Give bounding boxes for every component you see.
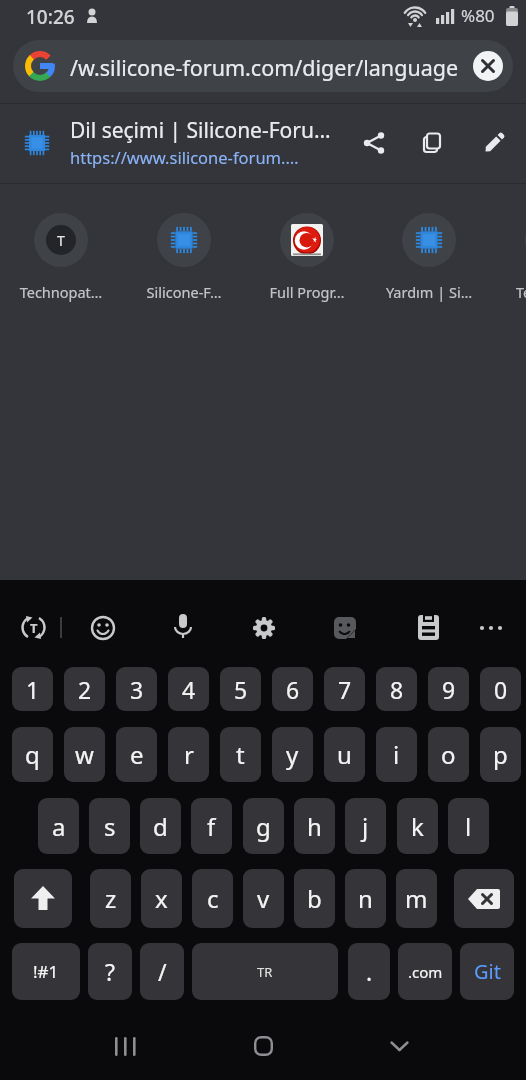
button[interactable] [379, 1028, 419, 1064]
staticText: b [307, 882, 322, 915]
button[interactable] [89, 614, 117, 642]
button[interactable]: i [376, 727, 417, 782]
button[interactable]: m [396, 869, 437, 928]
staticText: 0 [494, 674, 508, 705]
button[interactable]: .com [398, 943, 452, 1000]
button[interactable]: 8 [376, 667, 417, 711]
staticText: 4 [182, 674, 196, 705]
button[interactable] [412, 123, 452, 163]
button[interactable]: T [6, 206, 116, 308]
button[interactable]: 3 [116, 667, 157, 711]
button[interactable]: v [243, 869, 284, 928]
staticText: 7 [338, 674, 352, 705]
staticText: 9 [442, 674, 456, 705]
button[interactable]: Yardım | Si… [374, 206, 484, 308]
staticText: c [207, 882, 219, 915]
button[interactable] [415, 613, 442, 643]
button[interactable]: z [90, 869, 131, 928]
button[interactable]: k [397, 798, 438, 854]
button[interactable]: p [480, 727, 521, 782]
button[interactable]: 9 [428, 667, 469, 711]
staticText: y [286, 738, 299, 771]
button[interactable]: w [64, 727, 105, 782]
staticText: u [337, 738, 352, 771]
staticText: k [411, 810, 424, 843]
staticText: e [130, 738, 144, 771]
button[interactable]: f [191, 798, 232, 854]
button[interactable]: Teknoloji… [497, 206, 526, 308]
button[interactable] [473, 51, 503, 81]
staticText: r [184, 738, 194, 771]
staticText: Teknoloji… [497, 282, 526, 302]
button[interactable]: n [345, 869, 386, 928]
staticText: / [158, 956, 167, 987]
staticText: o [441, 738, 456, 771]
button[interactable] [106, 1028, 146, 1064]
button[interactable] [354, 123, 394, 163]
button[interactable]: 4 [168, 667, 209, 711]
button[interactable]: TR [192, 943, 338, 1000]
staticText: 2 [78, 674, 92, 705]
staticText: !#1 [33, 960, 59, 983]
button[interactable]: b [294, 869, 335, 928]
button[interactable] [14, 869, 72, 928]
button[interactable]: Full Progr… [252, 206, 362, 308]
staticText: 1 [26, 674, 40, 705]
button[interactable]: ? [88, 943, 132, 1000]
button[interactable]: Git [460, 943, 514, 1000]
button[interactable]: 2 [64, 667, 105, 711]
staticText: x [155, 882, 168, 915]
staticText: 6 [286, 674, 300, 705]
button[interactable]: o [428, 727, 469, 782]
staticText: w [75, 738, 94, 771]
button[interactable]: / [140, 943, 184, 1000]
button[interactable] [169, 612, 197, 644]
button[interactable]: h [294, 798, 335, 854]
button[interactable] [478, 620, 504, 636]
button[interactable]: x [141, 869, 182, 928]
button[interactable]: 7 [324, 667, 365, 711]
staticText: Git [474, 958, 501, 985]
button[interactable]: q [12, 727, 53, 782]
button[interactable]: c [192, 869, 233, 928]
button[interactable]: Silicone-F… [129, 206, 239, 308]
button[interactable]: t [220, 727, 261, 782]
button[interactable]: T [20, 614, 47, 641]
staticText: . [366, 956, 373, 987]
button[interactable]: d [140, 798, 181, 854]
button[interactable]: . [348, 943, 390, 1000]
staticText: 3 [130, 674, 144, 705]
button[interactable]: 0 [480, 667, 521, 711]
staticText: a [52, 810, 66, 843]
button[interactable]: 1 [12, 667, 53, 711]
staticText: Dil seçimi | Silicone-Foru… [70, 116, 331, 145]
button[interactable] [243, 1028, 283, 1064]
staticText: 5 [234, 674, 248, 705]
button[interactable] [250, 614, 278, 642]
button[interactable]: !#1 [12, 943, 80, 1000]
button[interactable]: Dil seçimi | Silicone-Foru… [0, 104, 526, 183]
button[interactable]: y [272, 727, 313, 782]
button[interactable]: j [345, 798, 386, 854]
staticText: 10:26 [26, 4, 75, 30]
button[interactable]: r [168, 727, 209, 782]
button[interactable]: s [89, 798, 130, 854]
staticText: s [104, 810, 116, 843]
staticText: n [358, 882, 373, 915]
button[interactable]: g [243, 798, 284, 854]
staticText: TR [257, 963, 273, 981]
button[interactable] [474, 123, 514, 163]
button[interactable]: 6 [272, 667, 313, 711]
button[interactable]: l [448, 798, 489, 854]
button[interactable]: /w.silicone-forum.com/diger/language [13, 40, 513, 92]
staticText: i [393, 738, 400, 771]
button[interactable]: u [324, 727, 365, 782]
button[interactable]: 5 [220, 667, 261, 711]
button[interactable]: e [116, 727, 157, 782]
button[interactable] [331, 614, 359, 642]
button[interactable]: a [38, 798, 79, 854]
staticText: d [153, 810, 168, 843]
staticText: Technopat… [6, 282, 116, 302]
staticText: j [362, 810, 369, 843]
button[interactable] [454, 869, 514, 928]
